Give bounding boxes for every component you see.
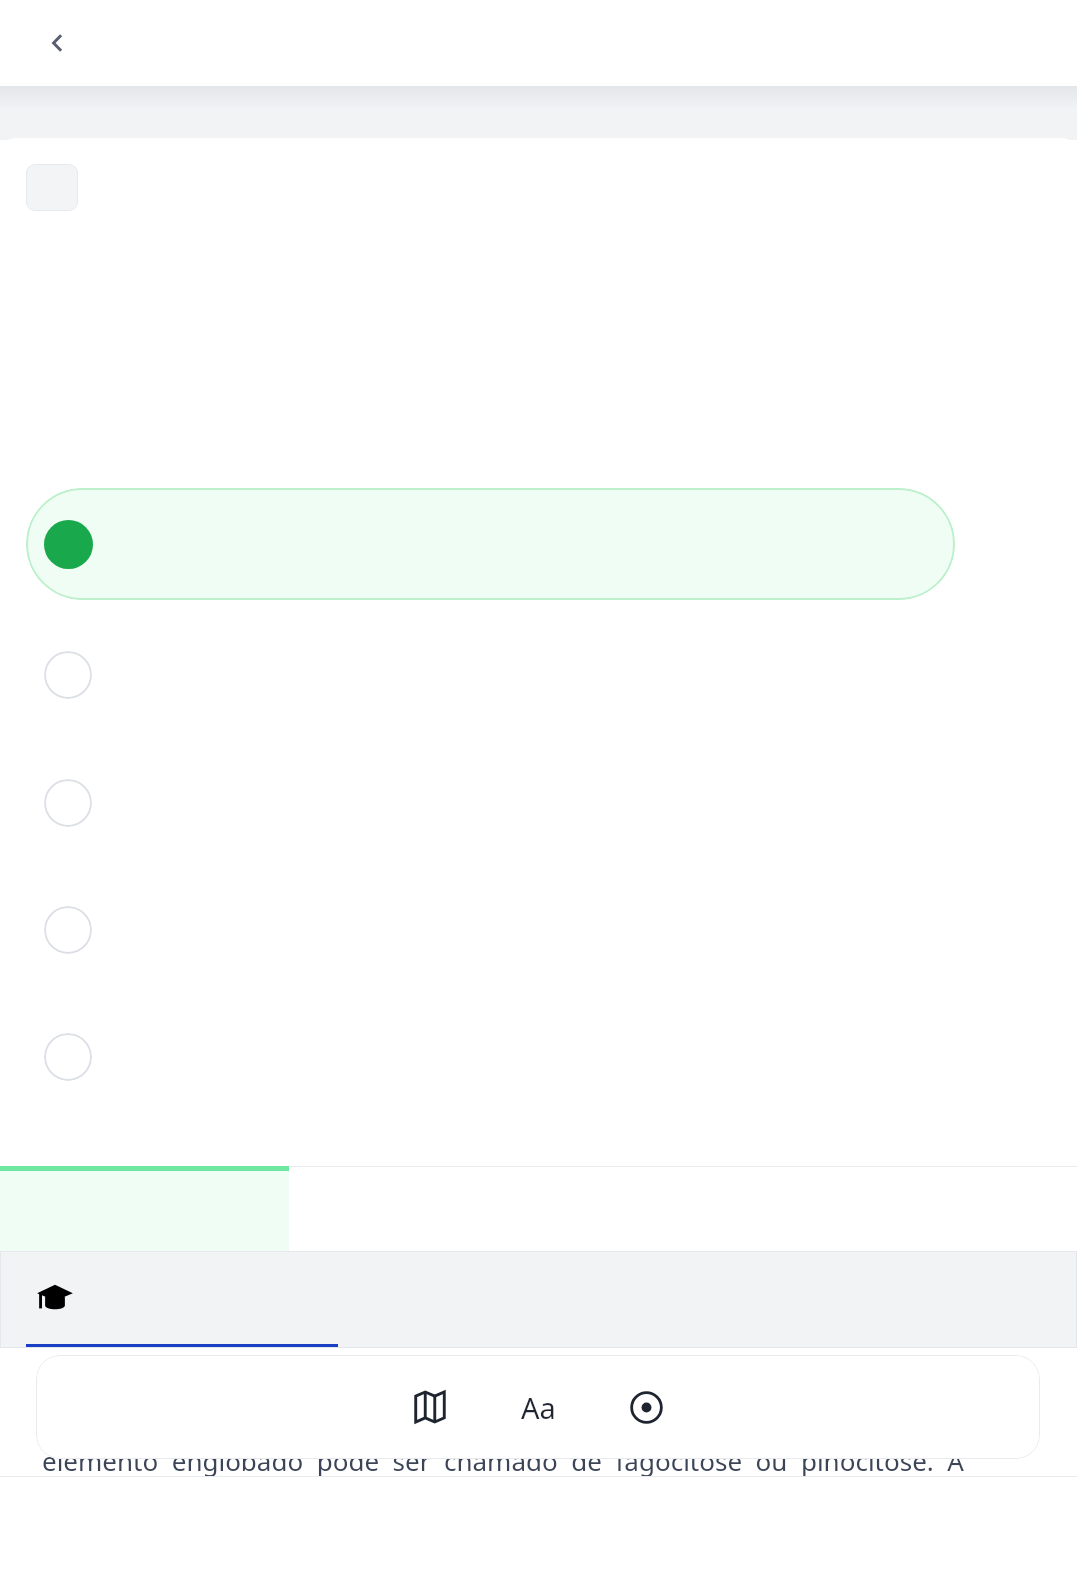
button[interactable]: Back [20,14,96,72]
staticText: Aa [521,1388,556,1427]
button[interactable]: Map [398,1375,462,1439]
button[interactable]: Text size [506,1375,570,1439]
button[interactable]: Question number [26,164,78,211]
staticText: elemento englobado pode ser chamado de f… [42,1443,964,1478]
button[interactable] [26,488,955,600]
button[interactable]: Focus mode [614,1375,678,1439]
button[interactable]: Study [26,1251,338,1348]
